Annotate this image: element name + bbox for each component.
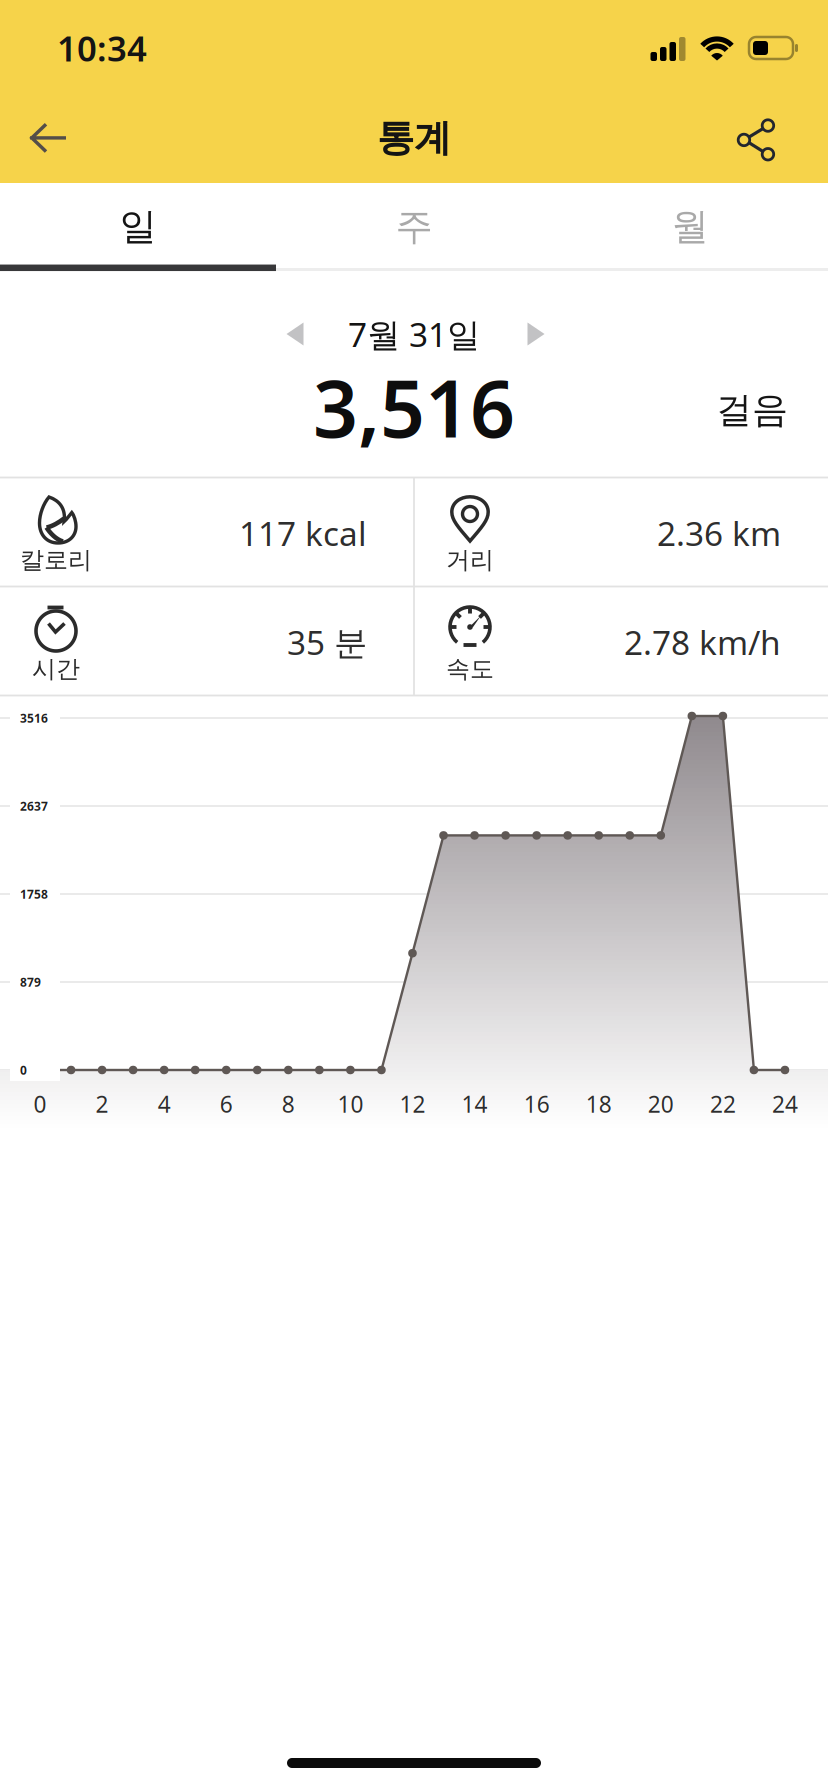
staticText: 통계 — [377, 115, 451, 161]
staticText: 3516 — [20, 710, 48, 726]
staticText: 월 — [671, 204, 708, 249]
staticText: 7월 31일 — [348, 312, 480, 356]
staticText: 8 — [282, 1089, 295, 1119]
staticText: 3,516 — [313, 355, 515, 459]
staticText: 0 — [20, 1062, 27, 1078]
button[interactable]: 일 — [0, 184, 276, 268]
staticText: 24 — [772, 1089, 798, 1119]
staticText: 2.36 km — [657, 511, 781, 555]
staticText: 22 — [710, 1089, 736, 1119]
staticText: 0 — [33, 1089, 46, 1119]
staticText: 20 — [648, 1089, 674, 1119]
staticText: 16 — [524, 1089, 550, 1119]
staticText: 시간 — [32, 654, 80, 684]
button[interactable]: Next day — [515, 310, 556, 357]
staticText: 칼로리 — [20, 545, 92, 575]
staticText: 35 분 — [287, 620, 367, 664]
button[interactable]: 주 — [276, 184, 552, 268]
button[interactable]: Share — [723, 108, 789, 172]
staticText: 10:34 — [57, 25, 147, 71]
staticText: 2637 — [20, 798, 48, 814]
button[interactable]: 월 — [552, 184, 828, 268]
staticText: 18 — [586, 1089, 612, 1119]
staticText: 주 — [395, 204, 432, 249]
staticText: 거리 — [446, 545, 494, 575]
button[interactable]: Back — [15, 109, 81, 167]
staticText: 걸음 — [716, 388, 788, 432]
staticText: 속도 — [446, 654, 494, 684]
staticText: 12 — [399, 1089, 425, 1119]
staticText: 117 kcal — [239, 511, 367, 555]
staticText: 1758 — [20, 886, 48, 902]
button[interactable]: Previous day — [274, 310, 315, 357]
staticText: 6 — [220, 1089, 233, 1119]
staticText: 10 — [337, 1089, 363, 1119]
staticText: 14 — [462, 1089, 488, 1119]
staticText: 일 — [119, 204, 156, 249]
staticText: 2 — [96, 1089, 109, 1119]
staticText: 879 — [20, 974, 41, 990]
staticText: 4 — [158, 1089, 171, 1119]
staticText: 2.78 km/h — [624, 620, 781, 664]
